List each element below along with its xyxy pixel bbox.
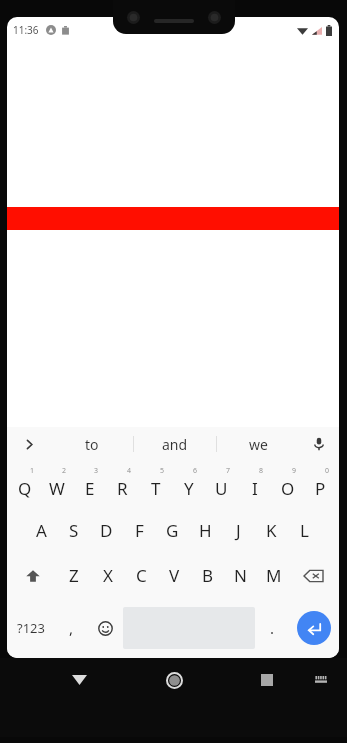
staticText: L (300, 519, 309, 542)
staticText: 7 (226, 466, 231, 476)
button[interactable]: Voice input (299, 427, 339, 461)
button[interactable]: 4 (106, 461, 139, 508)
staticText: S (69, 519, 79, 542)
staticText: U (215, 477, 228, 500)
staticText: P (315, 477, 326, 500)
button[interactable]: Enter (289, 598, 339, 658)
button[interactable]: L (288, 508, 321, 553)
staticText: R (117, 477, 128, 500)
button[interactable]: More suggestions (7, 427, 51, 461)
button[interactable]: G (156, 508, 189, 553)
staticText: A (36, 519, 47, 542)
staticText: ?123 (17, 619, 45, 637)
button[interactable]: H (189, 508, 222, 553)
staticText: 0 (325, 466, 330, 476)
button[interactable]: Z (57, 553, 91, 598)
staticText: V (169, 564, 180, 587)
button[interactable]: K (255, 508, 288, 553)
button[interactable]: 0 (304, 461, 337, 508)
staticText: E (85, 477, 95, 500)
staticText: 3 (94, 466, 99, 476)
button[interactable]: . (255, 598, 289, 658)
button[interactable]: to (51, 427, 133, 461)
staticText: 11:36 (13, 23, 39, 37)
staticText: we (249, 435, 268, 454)
button[interactable]: Home (157, 663, 191, 697)
staticText: 4 (127, 466, 132, 476)
button[interactable]: 5 (139, 461, 172, 508)
button[interactable]: , (55, 598, 87, 658)
staticText: and (162, 435, 188, 454)
button[interactable]: 6 (172, 461, 205, 508)
staticText: O (281, 477, 295, 500)
staticText: N (234, 564, 247, 587)
button[interactable]: J (222, 508, 255, 553)
button[interactable]: Backspace (290, 553, 337, 598)
button[interactable]: M (257, 553, 290, 598)
button[interactable]: Emoji (87, 598, 123, 658)
staticText: D (100, 519, 113, 542)
staticText: F (135, 519, 144, 542)
button[interactable]: 1 (9, 461, 41, 508)
staticText: to (85, 435, 99, 454)
button[interactable]: V (158, 553, 191, 598)
staticText: T (151, 477, 161, 500)
staticText: . (270, 618, 275, 638)
button[interactable]: N (224, 553, 257, 598)
button[interactable]: we (217, 427, 299, 461)
button[interactable]: 7 (205, 461, 238, 508)
button[interactable]: D (90, 508, 123, 553)
staticText: H (199, 519, 212, 542)
button[interactable]: Back (62, 663, 96, 697)
button[interactable]: A (25, 508, 57, 553)
button[interactable]: and (134, 427, 216, 461)
staticText: W (49, 477, 65, 500)
staticText: 2 (62, 466, 67, 476)
button[interactable]: 2 (41, 461, 73, 508)
button[interactable]: S (57, 508, 90, 553)
button[interactable]: B (191, 553, 224, 598)
staticText: G (166, 519, 179, 542)
staticText: M (266, 564, 282, 587)
staticText: 6 (193, 466, 198, 476)
button[interactable]: 3 (73, 461, 106, 508)
button[interactable]: X (91, 553, 125, 598)
staticText: 9 (292, 466, 297, 476)
staticText: J (236, 519, 241, 542)
button[interactable]: C (125, 553, 158, 598)
staticText: , (69, 618, 74, 638)
staticText: 1 (30, 466, 35, 476)
staticText: K (266, 519, 277, 542)
staticText: 5 (160, 466, 165, 476)
staticText: X (103, 564, 113, 587)
button[interactable]: Shift (9, 553, 57, 598)
button[interactable]: Recents (250, 663, 284, 697)
staticText: 8 (259, 466, 264, 476)
staticText: Q (18, 477, 32, 500)
button[interactable]: 8 (238, 461, 271, 508)
staticText: C (136, 564, 147, 587)
button[interactable]: ?123 (7, 598, 55, 658)
staticText: B (202, 564, 214, 587)
staticText: Y (184, 477, 194, 500)
staticText: Z (69, 564, 79, 587)
button[interactable]: F (123, 508, 156, 553)
button[interactable]: 9 (271, 461, 304, 508)
button[interactable]: Switch keyboard (308, 667, 334, 693)
staticText: I (252, 477, 258, 500)
